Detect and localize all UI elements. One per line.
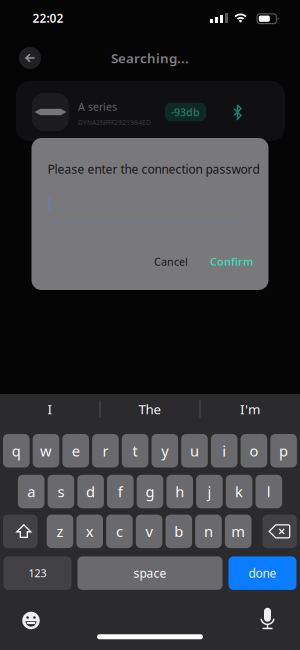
button[interactable]: Dictation bbox=[261, 608, 274, 629]
button[interactable]: v bbox=[136, 515, 162, 548]
button[interactable]: I'm bbox=[201, 391, 299, 427]
staticText: t bbox=[133, 441, 138, 460]
staticText: y bbox=[161, 441, 168, 460]
staticText: 22:02 bbox=[32, 10, 63, 26]
staticText: j bbox=[207, 482, 211, 501]
button[interactable]: space bbox=[77, 556, 222, 590]
staticText: x bbox=[86, 522, 94, 541]
staticText: The bbox=[138, 400, 161, 418]
staticText: i bbox=[222, 441, 226, 460]
button[interactable]: p bbox=[270, 434, 297, 467]
button[interactable]: Shift bbox=[3, 515, 38, 548]
button[interactable]: x bbox=[76, 515, 103, 548]
staticText: c bbox=[116, 522, 123, 541]
staticText: -93db bbox=[171, 105, 200, 119]
button[interactable]: l bbox=[255, 475, 282, 508]
button[interactable]: b bbox=[165, 515, 192, 548]
button[interactable]: u bbox=[181, 434, 208, 467]
button[interactable]: i bbox=[211, 434, 237, 467]
staticText: Confirm bbox=[210, 254, 253, 269]
staticText: g bbox=[145, 482, 154, 501]
staticText: A series bbox=[78, 99, 117, 114]
staticText: I'm bbox=[240, 400, 260, 418]
button[interactable]: g bbox=[137, 475, 163, 508]
staticText: 123 bbox=[28, 566, 46, 580]
button[interactable]: a bbox=[18, 475, 44, 508]
button[interactable]: q bbox=[3, 434, 30, 467]
staticText: d bbox=[86, 482, 95, 501]
staticText: f bbox=[118, 482, 123, 501]
button[interactable]: The bbox=[101, 391, 199, 427]
button[interactable]: Cancel bbox=[154, 254, 188, 269]
staticText: p bbox=[279, 441, 288, 460]
button[interactable]: t bbox=[122, 434, 148, 467]
staticText: z bbox=[56, 522, 63, 541]
staticText: done bbox=[248, 565, 276, 581]
button[interactable]: c bbox=[106, 515, 133, 548]
staticText: I bbox=[47, 400, 52, 418]
button[interactable]: j bbox=[196, 475, 223, 508]
button[interactable]: Back bbox=[19, 47, 41, 69]
button[interactable]: m bbox=[225, 515, 251, 548]
staticText: DYNA2NFFF2921984ED bbox=[78, 118, 151, 127]
staticText: k bbox=[235, 482, 243, 501]
button[interactable]: Delete bbox=[262, 515, 297, 548]
button[interactable]: z bbox=[47, 515, 73, 548]
button[interactable]: w bbox=[33, 434, 59, 467]
staticText: m bbox=[231, 522, 245, 541]
button[interactable]: o bbox=[241, 434, 267, 467]
staticText: b bbox=[174, 522, 183, 541]
button[interactable]: h bbox=[166, 475, 193, 508]
button[interactable]: 123 bbox=[3, 556, 71, 590]
staticText: q bbox=[12, 441, 21, 460]
staticText: r bbox=[102, 441, 108, 460]
button[interactable]: A series bbox=[16, 81, 285, 141]
staticText: Cancel bbox=[154, 254, 188, 269]
button[interactable]: k bbox=[226, 475, 252, 508]
button[interactable]: e bbox=[62, 434, 89, 467]
button[interactable]: d bbox=[77, 475, 104, 508]
staticText: n bbox=[204, 522, 213, 541]
button[interactable]: Emoji bbox=[22, 612, 40, 629]
staticText: space bbox=[133, 565, 166, 581]
button[interactable]: f bbox=[107, 475, 134, 508]
staticText: Please enter the connection password bbox=[47, 161, 259, 177]
staticText: o bbox=[249, 441, 258, 460]
button[interactable]: r bbox=[92, 434, 119, 467]
button[interactable]: I bbox=[1, 391, 99, 427]
staticText: s bbox=[57, 482, 64, 501]
staticText: u bbox=[190, 441, 199, 460]
button[interactable]: done bbox=[228, 556, 296, 590]
staticText: h bbox=[175, 482, 184, 501]
button[interactable]: s bbox=[48, 475, 74, 508]
button[interactable]: n bbox=[195, 515, 222, 548]
staticText: a bbox=[27, 482, 35, 501]
staticText: e bbox=[72, 441, 80, 460]
staticText: Searching... bbox=[111, 49, 189, 67]
button[interactable]: Confirm bbox=[210, 254, 253, 269]
staticText: w bbox=[40, 441, 52, 460]
staticText: l bbox=[267, 482, 271, 501]
staticText: v bbox=[146, 522, 153, 541]
button[interactable]: y bbox=[151, 434, 178, 467]
